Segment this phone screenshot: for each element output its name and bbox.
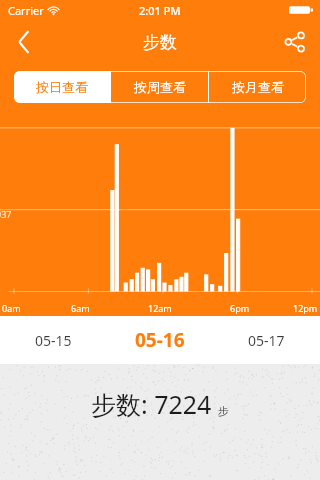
button[interactable]: 05-15 xyxy=(0,316,106,364)
staticText: 05-15 xyxy=(35,331,72,350)
button[interactable]: 05-16 xyxy=(106,316,213,364)
staticText: 按周查看 xyxy=(134,79,186,95)
staticText: 按日查看 xyxy=(36,79,88,95)
staticText: 2:01 PM xyxy=(139,3,181,18)
staticText: 937 xyxy=(0,208,12,220)
staticText: 0am xyxy=(2,302,21,314)
staticText: 步 xyxy=(218,404,229,418)
staticText: 6am xyxy=(71,302,90,314)
button[interactable]: 按周查看 xyxy=(111,71,208,103)
staticText: 步数: 7224 xyxy=(91,387,212,421)
staticText: 05-17 xyxy=(248,331,285,350)
button[interactable]: 按日查看 xyxy=(14,71,110,103)
staticText: Carrier xyxy=(8,3,44,18)
staticText: 6pm xyxy=(230,302,250,314)
staticText: 12am xyxy=(148,302,172,314)
staticText: 按月查看 xyxy=(232,79,284,95)
staticText: 05-16 xyxy=(135,327,185,353)
staticText: 步数 xyxy=(143,32,177,53)
staticText: 12pm xyxy=(293,302,318,314)
button[interactable]: 按月查看 xyxy=(209,71,306,103)
button[interactable]: 05-17 xyxy=(213,316,320,364)
button[interactable]: Share xyxy=(270,20,320,64)
button[interactable]: Back xyxy=(0,20,48,64)
